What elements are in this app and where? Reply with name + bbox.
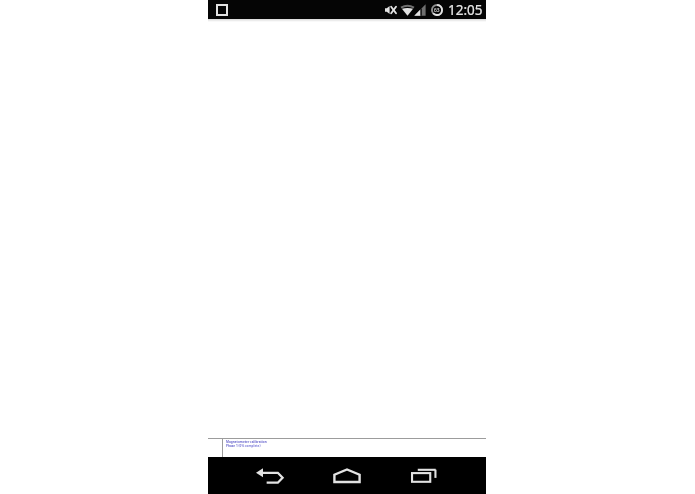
button[interactable]: Home [308,457,386,494]
staticText: 63 [434,7,440,14]
button[interactable]: Magnetometer calibration [226,439,267,448]
button[interactable]: Recent apps [386,457,486,494]
staticText: Magnetometer calibration [226,440,267,444]
staticText: 12:05 [448,1,483,19]
staticText: Phase 1 (0% complete) [226,444,261,448]
button[interactable]: Back [208,457,308,494]
